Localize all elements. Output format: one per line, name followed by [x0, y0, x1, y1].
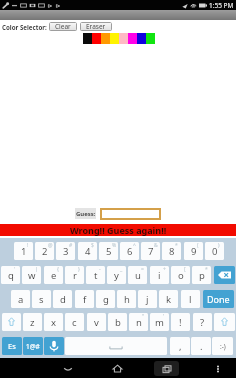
button[interactable]: l [181, 290, 200, 308]
staticText: “ [142, 313, 144, 320]
button[interactable]: m [150, 313, 169, 331]
staticText: % [112, 242, 117, 249]
staticText: 6 [127, 245, 133, 258]
button[interactable]: 0 [205, 242, 224, 260]
button[interactable]: b [108, 313, 127, 331]
button[interactable]: q [1, 266, 20, 284]
staticText: + [163, 266, 166, 273]
staticText: ^ [133, 242, 136, 249]
button[interactable]: 1@# [23, 337, 43, 355]
staticText: & [154, 242, 158, 249]
button[interactable]: . [191, 337, 211, 355]
button[interactable]: t [86, 266, 105, 284]
staticText: a [18, 293, 24, 306]
staticText: c [72, 316, 77, 329]
button[interactable]: e [44, 266, 63, 284]
staticText: u [135, 269, 141, 282]
button[interactable]: 7 [141, 242, 160, 260]
staticText: Es [8, 341, 16, 351]
button[interactable]: Guess: [75, 208, 96, 219]
button[interactable]: Home [105, 358, 129, 378]
button[interactable]: p [192, 266, 211, 284]
button[interactable]: :-) [212, 337, 233, 355]
staticText: 1@# [26, 342, 40, 351]
button[interactable]: , [170, 337, 190, 355]
staticText: i [158, 269, 161, 282]
button[interactable]: u [128, 266, 147, 284]
button[interactable]: More options [210, 358, 226, 378]
staticText: y [114, 269, 119, 282]
button[interactable]: n [129, 313, 148, 331]
staticText: $ [91, 242, 94, 249]
staticText: t [94, 269, 98, 282]
button[interactable]: w [22, 266, 41, 284]
button[interactable]: 2 [35, 242, 54, 260]
staticText: l [189, 293, 192, 306]
button[interactable]: c [65, 313, 84, 331]
button[interactable]: g [96, 290, 115, 308]
button[interactable]: Space [65, 337, 167, 355]
button[interactable]: r [65, 266, 84, 284]
button[interactable]: z [23, 313, 42, 331]
button[interactable]: ? [193, 313, 212, 331]
staticText: ' [14, 266, 16, 273]
staticText: x [51, 316, 57, 329]
button[interactable]: Recent apps [153, 358, 179, 378]
button[interactable]: v [87, 313, 106, 331]
staticText: 9 [191, 245, 197, 258]
button[interactable]: 4 [78, 242, 97, 260]
staticText: ) [218, 242, 220, 249]
button[interactable]: ! [171, 313, 190, 331]
button[interactable]: 6 [120, 242, 139, 260]
button[interactable]: Shift [214, 313, 235, 331]
button[interactable]: j [138, 290, 157, 308]
button[interactable]: Es [2, 337, 22, 355]
button[interactable]: 5 [99, 242, 118, 260]
staticText: s [39, 293, 44, 306]
button[interactable]: Clear [49, 22, 77, 31]
staticText: e [51, 269, 57, 282]
staticText: 0 [212, 245, 218, 258]
staticText: - [99, 266, 101, 273]
button[interactable] [100, 208, 161, 220]
staticText: 7 [148, 245, 154, 258]
staticText: 1 [21, 245, 27, 258]
button[interactable]: Back [56, 358, 80, 378]
button[interactable]: Done [203, 290, 234, 308]
staticText: n [136, 316, 142, 329]
button[interactable]: d [53, 290, 72, 308]
button[interactable]: 8 [162, 242, 181, 260]
button[interactable]: a [11, 290, 30, 308]
staticText: @ [48, 242, 53, 249]
button[interactable]: k [159, 290, 178, 308]
button[interactable]: 3 [56, 242, 75, 260]
staticText: 8 [169, 245, 175, 258]
staticText: g [103, 293, 109, 306]
button[interactable]: f [75, 290, 94, 308]
button[interactable]: x [44, 313, 63, 331]
button[interactable]: o [171, 266, 190, 284]
button[interactable]: y [107, 266, 126, 284]
staticText: = [141, 266, 144, 273]
button[interactable]: h [117, 290, 136, 308]
button[interactable]: Shift [2, 313, 21, 331]
button[interactable]: Voice input [44, 337, 64, 355]
button[interactable]: s [32, 290, 51, 308]
button[interactable]: Eraser [80, 22, 112, 31]
staticText: * [175, 242, 178, 249]
button[interactable]: i [150, 266, 169, 284]
staticText: j [146, 293, 149, 306]
staticText: p [199, 269, 205, 282]
button[interactable]: 9 [184, 242, 203, 260]
button[interactable]: Backspace [214, 266, 235, 284]
staticText: o [178, 269, 184, 282]
button[interactable]: 1 [14, 242, 33, 260]
